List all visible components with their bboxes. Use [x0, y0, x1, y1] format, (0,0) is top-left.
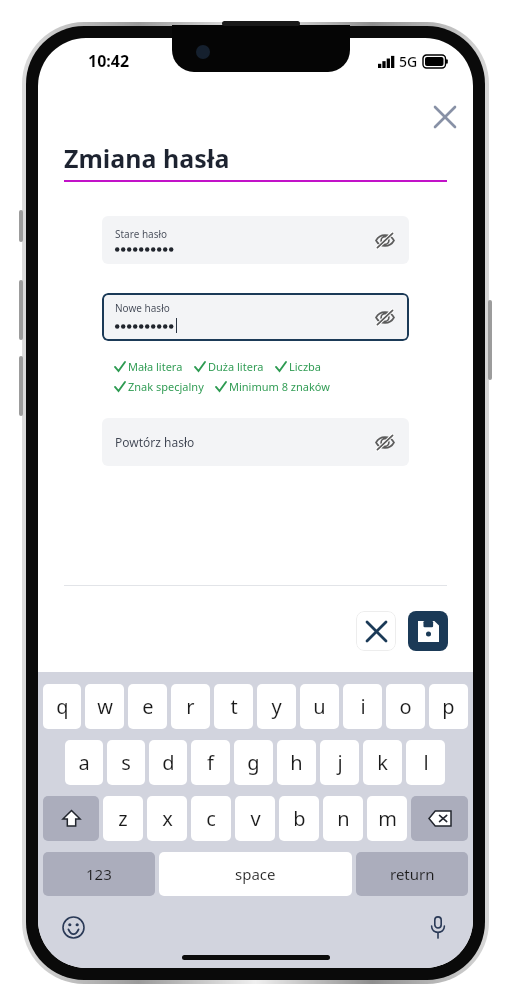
staticText: s: [121, 749, 131, 776]
button[interactable]: j: [320, 740, 359, 785]
staticText: x: [162, 805, 173, 832]
staticText: v: [250, 805, 261, 832]
button[interactable]: f: [191, 740, 230, 785]
staticText: Minimum 8 znaków: [229, 379, 330, 394]
button[interactable]: v: [235, 796, 275, 841]
button[interactable]: Pokaż hasło: [368, 300, 402, 334]
staticText: return: [390, 864, 435, 884]
button[interactable]: q: [43, 684, 81, 729]
button[interactable]: c: [191, 796, 231, 841]
button[interactable]: y: [257, 684, 296, 729]
staticText: Powtórz hasło: [115, 434, 195, 450]
staticText: Zmiana hasła: [64, 141, 230, 175]
staticText: Stare hasło: [115, 227, 168, 241]
staticText: c: [206, 805, 216, 832]
button[interactable]: i: [343, 684, 382, 729]
button[interactable]: 123: [43, 852, 155, 896]
button[interactable]: Nowe hasło: [102, 293, 409, 341]
button[interactable]: Stare hasło: [102, 216, 409, 264]
staticText: f: [207, 749, 214, 776]
staticText: Liczba: [289, 359, 321, 374]
button[interactable]: w: [85, 684, 124, 729]
staticText: w: [97, 693, 113, 720]
staticText: Znak specjalny: [128, 379, 204, 394]
staticText: p: [442, 693, 455, 720]
button[interactable]: space: [159, 852, 352, 896]
staticText: r: [186, 693, 195, 720]
staticText: d: [162, 749, 175, 776]
button[interactable]: Zamknij: [423, 95, 467, 139]
button[interactable]: return: [356, 852, 468, 896]
button[interactable]: Emoji: [56, 910, 90, 944]
button[interactable]: Backspace: [411, 796, 468, 841]
button[interactable]: Anuluj: [356, 611, 396, 651]
staticText: o: [399, 693, 412, 720]
button[interactable]: Shift: [43, 796, 99, 841]
button[interactable]: u: [300, 684, 339, 729]
staticText: h: [290, 749, 303, 776]
button[interactable]: Pokaż hasło: [368, 223, 402, 257]
button[interactable]: a: [65, 740, 103, 785]
staticText: 5G: [399, 52, 418, 71]
button[interactable]: n: [323, 796, 363, 841]
button[interactable]: e: [128, 684, 167, 729]
button[interactable]: k: [363, 740, 402, 785]
staticText: b: [293, 805, 306, 832]
button[interactable]: b: [279, 796, 319, 841]
button[interactable]: Powtórz hasło: [102, 418, 409, 466]
button[interactable]: m: [367, 796, 407, 841]
staticText: q: [56, 693, 69, 720]
button[interactable]: Dyktowanie: [421, 910, 455, 944]
staticText: u: [313, 693, 326, 720]
staticText: y: [271, 693, 282, 720]
staticText: z: [118, 805, 128, 832]
button[interactable]: t: [214, 684, 253, 729]
staticText: a: [78, 749, 90, 776]
staticText: j: [337, 749, 343, 776]
button[interactable]: x: [147, 796, 187, 841]
staticText: Mała litera: [128, 359, 183, 374]
staticText: k: [377, 749, 388, 776]
staticText: Duża litera: [208, 359, 264, 374]
staticText: 123: [86, 864, 112, 884]
button[interactable]: Pokaż hasło: [368, 425, 402, 459]
staticText: space: [235, 864, 276, 884]
button[interactable]: g: [234, 740, 273, 785]
staticText: l: [423, 749, 429, 776]
button[interactable]: s: [107, 740, 145, 785]
button[interactable]: o: [386, 684, 425, 729]
button[interactable]: h: [277, 740, 316, 785]
staticText: e: [142, 693, 154, 720]
staticText: g: [247, 749, 260, 776]
staticText: Nowe hasło: [115, 301, 170, 315]
button[interactable]: r: [171, 684, 210, 729]
button[interactable]: l: [406, 740, 445, 785]
button[interactable]: d: [149, 740, 187, 785]
staticText: n: [337, 805, 350, 832]
button[interactable]: Zapisz: [408, 611, 448, 651]
staticText: m: [378, 805, 397, 832]
staticText: t: [230, 693, 238, 720]
button[interactable]: p: [429, 684, 468, 729]
staticText: i: [360, 693, 366, 720]
staticText: 10:42: [88, 50, 130, 72]
button[interactable]: z: [103, 796, 143, 841]
